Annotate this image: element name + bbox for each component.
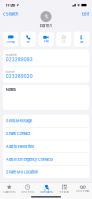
button[interactable]: Search — [3, 10, 20, 18]
staticText: Share Contact — [6, 131, 30, 136]
staticText: Contacts — [40, 190, 52, 193]
staticText: 11:26 — [6, 3, 16, 7]
button[interactable]: Favorites — [0, 184, 18, 193]
staticText: 023289020 — [6, 74, 33, 79]
button[interactable]: Add to Favorites — [3, 140, 89, 153]
staticText: Edit — [82, 12, 89, 17]
staticText: Voicemail — [76, 189, 90, 193]
button[interactable]: mobile — [3, 49, 89, 66]
staticText: Keypad — [59, 190, 69, 193]
button[interactable]: pay — [74, 31, 89, 47]
button[interactable]: Add to Emergency Contacts — [3, 153, 89, 165]
staticText: Favorites — [3, 190, 15, 193]
button[interactable]: Edit — [80, 10, 89, 18]
button[interactable]: Voicemail — [74, 185, 92, 193]
staticText: Add to Emergency Contacts — [6, 157, 53, 162]
button[interactable]: Contacts — [37, 184, 55, 193]
button[interactable]: Share My Location — [3, 166, 89, 178]
button[interactable]: Share Contact — [3, 127, 89, 140]
staticText: mail — [61, 40, 66, 43]
button[interactable]: Recents — [18, 184, 37, 193]
button[interactable]: Notes — [3, 85, 89, 110]
staticText: video — [43, 40, 48, 43]
staticText: Search — [6, 12, 18, 17]
staticText: 023289083 — [6, 57, 33, 62]
staticText: call — [26, 41, 30, 43]
button[interactable]: video — [38, 32, 54, 46]
staticText: Share My Location — [6, 170, 38, 174]
button[interactable]: mail — [56, 32, 71, 47]
staticText: Recents — [22, 190, 34, 193]
staticText: Form 1 — [40, 23, 52, 28]
button[interactable]: Send Message — [3, 115, 89, 127]
button[interactable]: call — [21, 31, 36, 47]
staticText: Add to Favorites — [6, 144, 34, 149]
staticText: message — [6, 40, 14, 43]
button[interactable]: Keypad — [55, 184, 74, 193]
staticText: pay — [80, 41, 83, 43]
button[interactable]: message — [3, 32, 18, 47]
staticText: Send Message — [6, 118, 32, 123]
button[interactable]: home — [3, 66, 89, 83]
staticText: home — [6, 70, 15, 74]
staticText: Notes — [6, 87, 16, 92]
staticText: mobile — [6, 53, 17, 57]
